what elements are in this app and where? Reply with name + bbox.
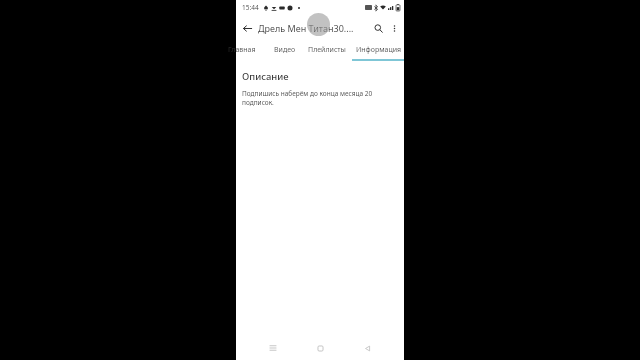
button[interactable]: Recent apps: [263, 338, 283, 358]
button[interactable]: Back: [357, 338, 377, 358]
staticText: Подпишись наберём до конца месяца 20 под…: [242, 89, 398, 107]
button[interactable]: More options: [386, 20, 402, 36]
staticText: Описание: [242, 70, 289, 83]
button[interactable]: Search: [370, 20, 386, 36]
staticText: Главная: [228, 45, 256, 55]
button[interactable]: Главная: [224, 40, 260, 59]
button[interactable]: Back: [239, 20, 255, 36]
staticText: 15:44: [242, 3, 259, 12]
button[interactable]: Видео: [270, 40, 300, 59]
staticText: Видео: [274, 45, 296, 55]
staticText: Информация: [356, 45, 402, 55]
button[interactable]: Home: [310, 338, 330, 358]
button[interactable]: Плейлисты: [304, 40, 350, 59]
staticText: Дрель Мен Титан30....: [258, 22, 370, 34]
button[interactable]: Информация: [352, 40, 406, 59]
staticText: Плейлисты: [308, 45, 346, 55]
